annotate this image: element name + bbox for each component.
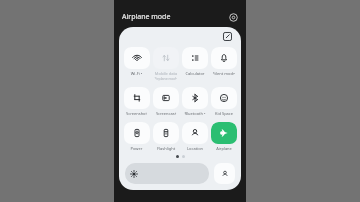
button[interactable]: Edit tiles — [221, 30, 233, 42]
staticText: Screencast — [153, 111, 179, 116]
staticText: Flashlight — [153, 146, 179, 151]
button[interactable]: Wi-Fi • — [123, 47, 150, 76]
button[interactable]: Calculator — [182, 47, 208, 76]
button[interactable]: User — [214, 163, 235, 184]
staticText: Power — [123, 146, 150, 151]
button[interactable]: Kid Space — [211, 87, 237, 116]
button[interactable]: Silent mode — [211, 47, 237, 76]
button[interactable]: Screencast — [153, 87, 179, 116]
staticText: Kid Space — [211, 111, 237, 116]
staticText: Silent mode — [211, 71, 237, 76]
staticText: Screenshot — [123, 111, 150, 116]
staticText: Mobile data — [153, 71, 179, 76]
button[interactable]: Screenshot — [123, 87, 150, 116]
staticText: Airplane mode — [211, 146, 237, 151]
button[interactable]: Mobile data — [153, 47, 179, 81]
staticText: Location — [182, 146, 208, 151]
button[interactable]: Flashlight — [153, 122, 179, 151]
staticText: Airplane mode — [122, 12, 171, 22]
button[interactable]: Airplane mode — [211, 122, 237, 151]
button[interactable]: Power — [123, 122, 150, 151]
staticText: Wi-Fi • — [123, 71, 150, 76]
button[interactable]: Brightness — [125, 163, 209, 184]
button[interactable]: Location — [182, 122, 208, 151]
button[interactable]: Bluetooth • — [182, 87, 208, 116]
staticText: Bluetooth • — [182, 111, 208, 116]
staticText: Airplane mode — [153, 76, 179, 81]
staticText: Calculator — [182, 71, 208, 76]
button[interactable]: Settings — [227, 11, 239, 23]
